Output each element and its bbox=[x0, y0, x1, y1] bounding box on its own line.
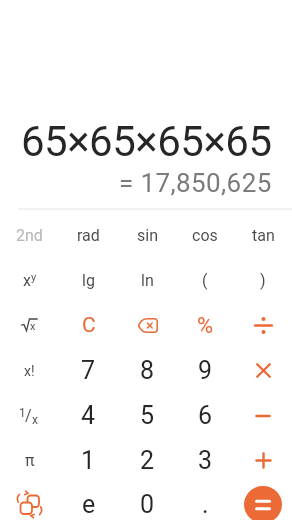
button[interactable]: π bbox=[0, 438, 59, 483]
staticText: rad bbox=[77, 226, 100, 245]
staticText: 5 bbox=[140, 401, 155, 430]
button[interactable]: tan bbox=[234, 213, 292, 258]
staticText: ( bbox=[202, 271, 208, 290]
staticText: x bbox=[30, 320, 36, 333]
staticText: ln bbox=[141, 271, 154, 290]
staticText: 4 bbox=[81, 401, 96, 430]
staticText: sin bbox=[137, 226, 158, 245]
button[interactable]: 4 bbox=[59, 393, 118, 438]
staticText: ) bbox=[260, 271, 266, 290]
button[interactable] bbox=[0, 483, 59, 520]
staticText: 7 bbox=[81, 356, 96, 385]
staticText: 6 bbox=[198, 401, 213, 430]
button[interactable]: 9 bbox=[176, 348, 234, 393]
button[interactable]: . bbox=[176, 483, 234, 520]
button[interactable] bbox=[234, 438, 292, 483]
button[interactable]: C bbox=[59, 303, 118, 348]
button[interactable]: 1 bbox=[0, 393, 59, 438]
button[interactable]: 8 bbox=[118, 348, 176, 393]
staticText: 0 bbox=[140, 490, 155, 519]
staticText: . bbox=[202, 490, 209, 519]
button[interactable]: 3 bbox=[176, 438, 234, 483]
button[interactable]: sin bbox=[118, 213, 176, 258]
button[interactable]: ( bbox=[176, 258, 234, 303]
button[interactable]: x bbox=[0, 303, 59, 348]
staticText: 65×65×65×65 bbox=[21, 117, 272, 166]
staticText: x bbox=[23, 271, 31, 290]
button[interactable]: x bbox=[0, 258, 59, 303]
button[interactable]: 0 bbox=[118, 483, 176, 520]
staticText: 1 bbox=[81, 446, 96, 475]
button[interactable]: % bbox=[176, 303, 234, 348]
button[interactable]: 5 bbox=[118, 393, 176, 438]
staticText: e bbox=[82, 490, 96, 519]
button[interactable] bbox=[234, 303, 292, 348]
button[interactable]: lg bbox=[59, 258, 118, 303]
button[interactable] bbox=[234, 348, 292, 393]
button[interactable]: e bbox=[59, 483, 118, 520]
staticText: 3 bbox=[198, 446, 213, 475]
button[interactable]: 6 bbox=[176, 393, 234, 438]
staticText: = 17,850,625 bbox=[119, 168, 272, 198]
button[interactable] bbox=[234, 483, 292, 520]
staticText: cos bbox=[192, 226, 218, 245]
staticText: lg bbox=[82, 271, 95, 290]
staticText: 2nd bbox=[16, 226, 43, 245]
staticText: y bbox=[31, 271, 37, 284]
staticText: / bbox=[25, 406, 32, 425]
button[interactable]: 7 bbox=[59, 348, 118, 393]
button[interactable]: ) bbox=[234, 258, 292, 303]
button[interactable]: cos bbox=[176, 213, 234, 258]
staticText: 1 bbox=[19, 406, 26, 420]
button[interactable]: x! bbox=[0, 348, 59, 393]
button[interactable] bbox=[234, 393, 292, 438]
staticText: % bbox=[197, 313, 214, 339]
button[interactable]: rad bbox=[59, 213, 118, 258]
button[interactable]: ln bbox=[118, 258, 176, 303]
staticText: C bbox=[82, 313, 96, 338]
button[interactable]: 2nd bbox=[0, 213, 59, 258]
staticText: tan bbox=[252, 226, 275, 245]
button[interactable]: 1 bbox=[59, 438, 118, 483]
staticText: x! bbox=[24, 363, 35, 379]
staticText: x bbox=[32, 413, 38, 427]
button[interactable] bbox=[118, 303, 176, 348]
staticText: π bbox=[25, 451, 35, 470]
button[interactable]: 2 bbox=[118, 438, 176, 483]
staticText: 8 bbox=[140, 356, 155, 385]
staticText: 9 bbox=[198, 356, 213, 385]
button[interactable] bbox=[244, 486, 282, 520]
staticText: 2 bbox=[140, 446, 155, 475]
